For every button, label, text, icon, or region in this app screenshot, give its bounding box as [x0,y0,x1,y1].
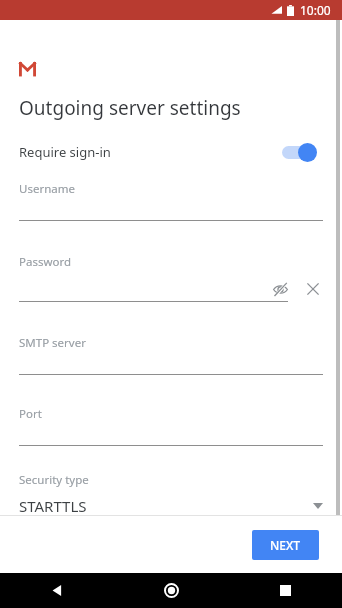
button[interactable]: Show password [270,279,290,299]
button[interactable]: Security type STARTTLS [19,472,323,515]
button[interactable]: Back [0,573,114,608]
staticText: Password [19,254,72,270]
staticText: Security type [19,472,89,488]
button[interactable]: Home [114,573,228,608]
button[interactable]: Require sign-in [19,137,323,167]
staticText: Port [19,406,42,422]
button[interactable]: SMTP server [19,335,323,375]
staticText: Username [19,181,75,197]
staticText: Outgoing server settings [19,95,241,121]
button[interactable]: Recent apps [228,573,342,608]
button[interactable]: Password [19,254,323,302]
button[interactable]: NEXT [252,530,319,560]
staticText: NEXT [270,537,301,553]
staticText: SMTP server [19,335,86,351]
staticText: 10:00 [300,2,331,18]
button[interactable]: Clear [303,279,323,299]
button[interactable]: Port [19,406,323,446]
staticText: STARTTLS [19,496,87,515]
staticText: Require sign-in [19,143,111,161]
button[interactable]: Require sign-in [277,141,323,163]
button[interactable]: Username [19,181,323,221]
